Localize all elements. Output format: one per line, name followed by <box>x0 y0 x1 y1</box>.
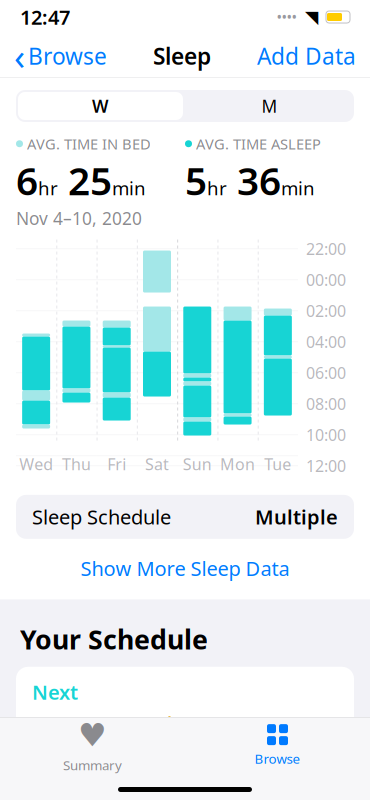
staticText: W <box>92 94 109 117</box>
staticText: Thu <box>62 453 91 475</box>
staticText: 00:00 <box>306 269 346 290</box>
staticText: 08:00 <box>306 393 346 414</box>
staticText: Fri <box>107 453 126 475</box>
button[interactable]: W <box>16 90 185 122</box>
staticText: 01:00 <box>32 736 104 773</box>
staticText: 25 <box>58 154 112 206</box>
button[interactable]: ‹ <box>14 32 107 80</box>
staticText: Add Data <box>257 41 356 71</box>
staticText: ♥ <box>78 717 107 753</box>
staticText: 12:47 <box>20 4 70 30</box>
staticText: Summary <box>63 756 122 774</box>
button[interactable]: Browse <box>185 717 370 767</box>
staticText: Multiple <box>255 504 338 530</box>
staticText: ‹ <box>14 32 25 80</box>
staticText: 5 <box>185 154 207 206</box>
staticText: Your Schedule <box>20 621 208 657</box>
staticText: min <box>112 175 146 200</box>
staticText: •••• <box>277 9 297 25</box>
staticText: 36 <box>227 154 281 206</box>
staticText: Sat <box>145 453 169 475</box>
staticText: WAKE UP <box>182 713 251 735</box>
staticText: 6 <box>16 154 38 206</box>
staticText: 22:00 <box>306 238 346 259</box>
staticText: Browse <box>254 750 300 767</box>
staticText: Sun <box>183 453 212 475</box>
staticText: Wed <box>19 453 53 475</box>
staticText: 🛏 <box>32 716 51 732</box>
staticText: BEDTIME <box>55 713 123 735</box>
staticText: 06:00 <box>306 362 346 383</box>
staticText: Browse <box>28 41 107 71</box>
button[interactable]: Show More Sleep Data <box>0 545 370 591</box>
button[interactable]: ♥ <box>0 710 185 774</box>
staticText: min <box>281 175 315 200</box>
staticText: AVG. TIME IN BED <box>27 134 151 153</box>
staticText: 04:00 <box>306 331 346 352</box>
staticText: Show More Sleep Data <box>80 555 289 581</box>
staticText: Next <box>32 679 78 705</box>
staticText: 02:00 <box>306 300 346 321</box>
staticText: M <box>261 94 277 117</box>
staticText: Tomorrow <box>160 774 242 797</box>
staticText: hr <box>207 175 227 200</box>
staticText: Sleep Schedule <box>32 504 171 530</box>
button[interactable]: Add Data <box>257 41 356 71</box>
staticText: Nov 4–10, 2020 <box>16 207 142 230</box>
staticText: 🔔 <box>160 716 178 732</box>
staticText: hr <box>38 175 58 200</box>
button[interactable]: M <box>185 90 354 122</box>
staticText: Sleep <box>153 41 211 71</box>
staticText: Mon <box>220 453 255 475</box>
staticText: ◥ <box>305 7 318 27</box>
button[interactable]: Sleep Schedule <box>16 495 354 539</box>
staticText: AVG. TIME ASLEEP <box>196 134 321 153</box>
staticText: 10:00 <box>306 424 346 445</box>
staticText: Tue <box>264 453 291 475</box>
staticText: 12:00 <box>306 455 346 476</box>
